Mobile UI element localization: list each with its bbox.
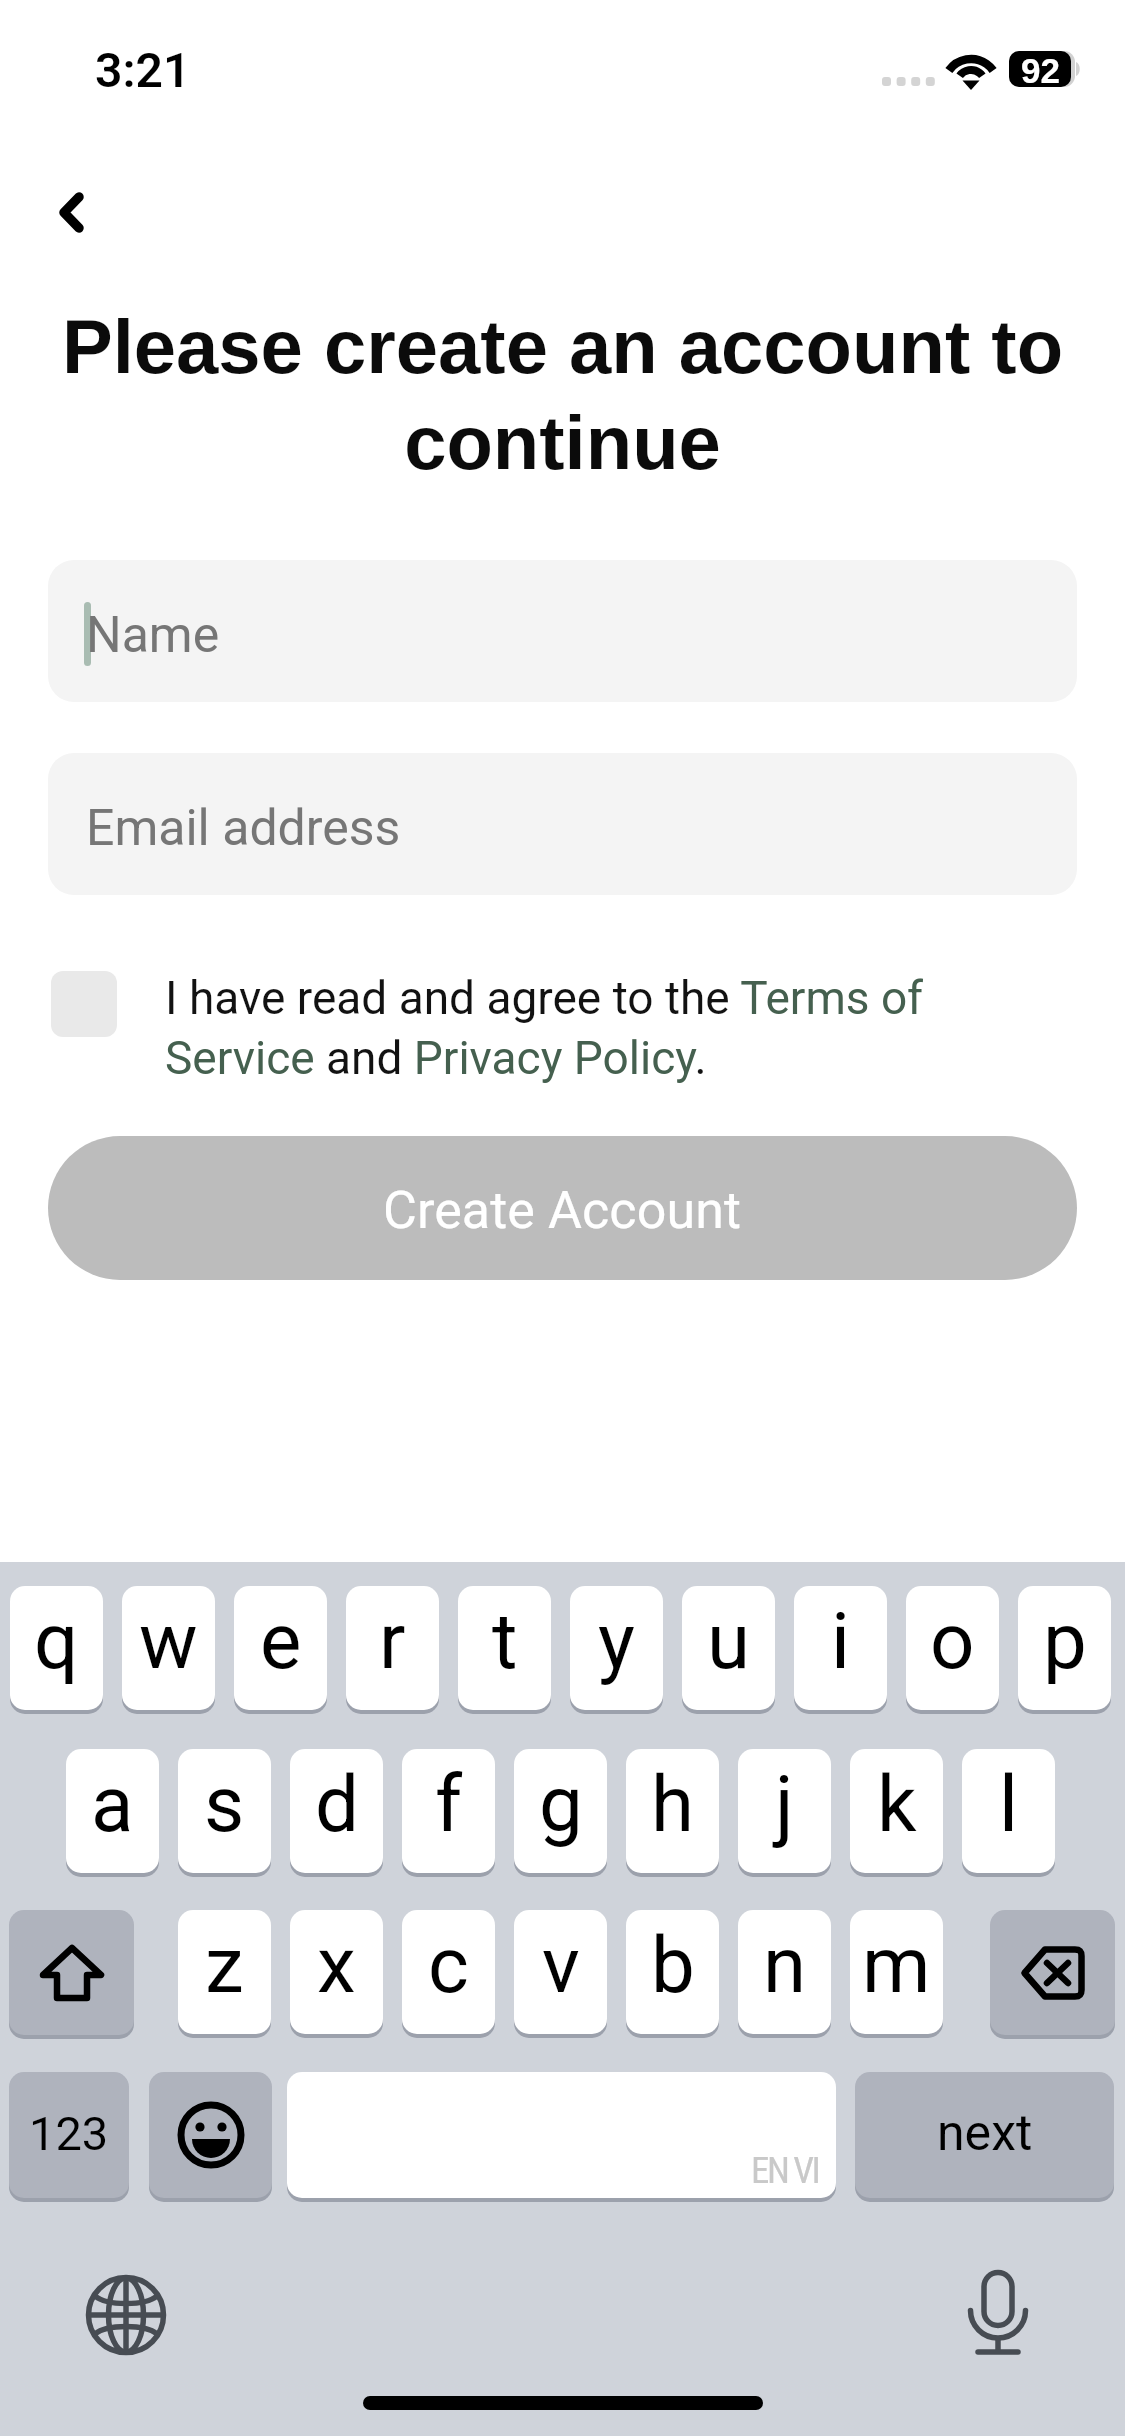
button[interactable]: t xyxy=(458,1586,551,1710)
staticText: l xyxy=(999,1759,1018,1850)
staticText: t xyxy=(492,1596,518,1687)
button[interactable]: s xyxy=(178,1749,271,1873)
staticText: u xyxy=(707,1596,750,1687)
button[interactable]: q xyxy=(10,1586,103,1710)
button[interactable]: r xyxy=(346,1586,439,1710)
button[interactable]: g xyxy=(514,1749,607,1873)
button[interactable]: b xyxy=(626,1910,719,2034)
staticText: next xyxy=(937,2104,1033,2163)
button[interactable]: f xyxy=(402,1749,495,1873)
staticText: I have read and agree to the Terms of Se… xyxy=(165,971,955,1085)
button[interactable]: o xyxy=(906,1586,999,1710)
button[interactable]: d xyxy=(290,1749,383,1873)
staticText: Please create an account to continue xyxy=(46,304,1079,485)
button[interactable]: p xyxy=(1018,1586,1111,1710)
staticText: Email address xyxy=(86,799,401,858)
staticText: k xyxy=(877,1759,917,1850)
staticText: s xyxy=(204,1759,245,1850)
button[interactable]: Back xyxy=(30,173,114,257)
button[interactable]: Email address xyxy=(48,753,1077,895)
staticText: a xyxy=(91,1759,134,1850)
button[interactable]: i xyxy=(794,1586,887,1710)
button[interactable]: Shift xyxy=(9,1910,134,2035)
button[interactable]: 123 xyxy=(9,2072,129,2198)
button[interactable]: a xyxy=(66,1749,159,1873)
button[interactable]: k xyxy=(850,1749,943,1873)
button[interactable]: Name xyxy=(48,560,1077,702)
button[interactable]: Create Account xyxy=(48,1136,1077,1280)
staticText: z xyxy=(205,1920,244,2011)
staticText: 92 xyxy=(1021,51,1060,87)
staticText: m xyxy=(862,1920,931,2011)
staticText: f xyxy=(435,1759,463,1850)
button[interactable]: e xyxy=(234,1586,327,1710)
button[interactable]: x xyxy=(290,1910,383,2034)
staticText: d xyxy=(315,1759,359,1850)
button[interactable]: y xyxy=(570,1586,663,1710)
staticText: EN VI xyxy=(751,2149,819,2192)
staticText: y xyxy=(598,1596,635,1687)
button[interactable]: I agree to the Terms of Service and Priv… xyxy=(51,971,117,1037)
button[interactable]: v xyxy=(514,1910,607,2034)
staticText: Name xyxy=(86,606,220,665)
staticText: g xyxy=(539,1759,583,1850)
staticText: q xyxy=(34,1596,79,1687)
staticText: e xyxy=(260,1596,302,1687)
button[interactable]: Emoji xyxy=(149,2072,272,2198)
staticText: b xyxy=(651,1920,695,2011)
button[interactable]: Space xyxy=(287,2072,836,2198)
staticText: n xyxy=(763,1920,807,2011)
staticText: 3:21 xyxy=(95,42,191,98)
staticText: h xyxy=(651,1759,694,1850)
button[interactable]: u xyxy=(682,1586,775,1710)
staticText: v xyxy=(542,1920,580,2011)
button[interactable]: w xyxy=(122,1586,215,1710)
staticText: i xyxy=(831,1596,850,1687)
staticText: r xyxy=(379,1596,406,1687)
button[interactable]: n xyxy=(738,1910,831,2034)
staticText: x xyxy=(317,1920,356,2011)
button[interactable]: z xyxy=(178,1910,271,2034)
staticText: p xyxy=(1043,1596,1087,1687)
button[interactable]: Dictation xyxy=(956,2263,1040,2363)
button[interactable]: m xyxy=(850,1910,943,2034)
staticText: Create Account xyxy=(383,1180,742,1241)
staticText: j xyxy=(775,1759,794,1850)
button[interactable]: c xyxy=(402,1910,495,2034)
staticText: c xyxy=(428,1920,469,2011)
button[interactable]: next xyxy=(855,2072,1114,2198)
staticText: 123 xyxy=(29,2106,109,2161)
button[interactable]: Backspace xyxy=(990,1910,1115,2035)
button[interactable]: l xyxy=(962,1749,1055,1873)
button[interactable]: j xyxy=(738,1749,831,1873)
button[interactable]: Change keyboard xyxy=(78,2267,174,2363)
staticText: o xyxy=(930,1596,975,1687)
button[interactable]: h xyxy=(626,1749,719,1873)
staticText: w xyxy=(139,1596,198,1687)
